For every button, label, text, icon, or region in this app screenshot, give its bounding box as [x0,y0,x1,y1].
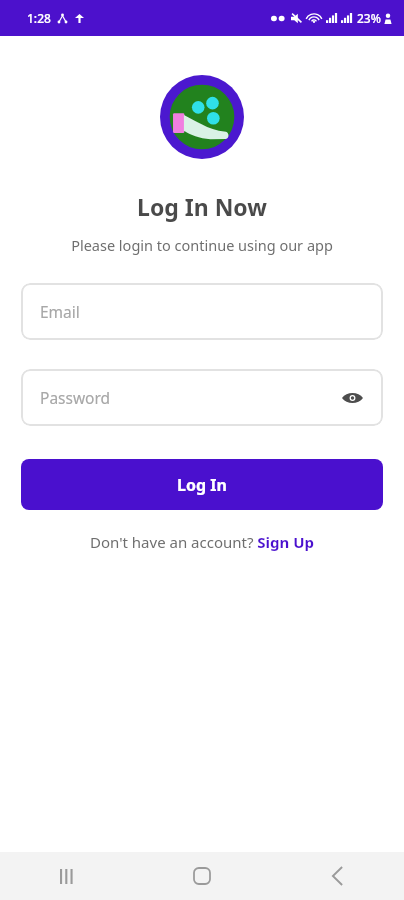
button[interactable]: Back [313,852,361,900]
button[interactable]: Show password [337,383,367,413]
button[interactable]: Don't have an account? Sign Up [0,532,404,552]
staticText: Log In Now [137,191,267,222]
staticText: Don't have an account? Sign Up [90,532,315,552]
staticText: Email [40,301,80,322]
button[interactable]: Password [21,369,383,426]
button[interactable]: Email [21,283,383,340]
staticText: Password [40,387,111,408]
staticText: Log In [177,474,227,496]
staticText: Please login to continue using our app [71,235,333,255]
button[interactable]: Log In [21,459,383,510]
staticText: 1:28 [27,10,51,26]
button[interactable]: Home [178,852,226,900]
staticText: 23% [357,10,381,26]
button[interactable]: Recent apps [43,852,91,900]
